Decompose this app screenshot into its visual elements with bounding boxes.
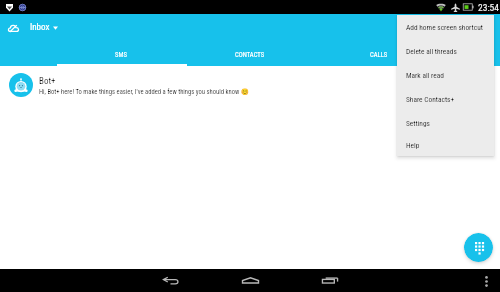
staticText: CALLS (370, 51, 388, 59)
button[interactable]: Help (397, 135, 494, 156)
button[interactable]: Bot+ (0, 66, 500, 103)
button[interactable]: Delete all threads (397, 39, 494, 63)
button[interactable]: Add home screen shortcut (397, 15, 494, 39)
button[interactable]: Dialpad (464, 233, 493, 262)
staticText: Share Contacts+ (406, 95, 455, 104)
staticText: Settings (406, 119, 430, 128)
button[interactable]: Mark all read (397, 63, 494, 87)
button[interactable]: Recent apps (290, 269, 370, 292)
staticText: 23:54 (478, 2, 499, 13)
button[interactable]: Account (4, 18, 23, 37)
staticText: SMS (115, 51, 127, 59)
button[interactable]: Share Contacts+ (397, 87, 494, 111)
staticText: Help (406, 141, 420, 150)
button[interactable]: SMS (56, 42, 185, 68)
staticText: Mark all read (406, 71, 444, 80)
button[interactable]: Settings (397, 111, 494, 135)
button[interactable]: CALLS (314, 42, 443, 68)
button[interactable]: Inbox (30, 18, 58, 37)
button[interactable]: Home (210, 269, 290, 292)
button[interactable]: More options (479, 274, 493, 288)
staticText: Inbox (30, 22, 50, 33)
staticText: CONTACTS (235, 51, 265, 59)
button[interactable]: CONTACTS (185, 42, 314, 68)
button[interactable]: Back (130, 269, 210, 292)
staticText: Delete all threads (406, 47, 457, 56)
staticText: Bot+ (39, 76, 56, 87)
staticText: Add home screen shortcut (406, 23, 483, 32)
staticText: Hi, Bot+ here! To make things easier, I'… (39, 88, 249, 96)
